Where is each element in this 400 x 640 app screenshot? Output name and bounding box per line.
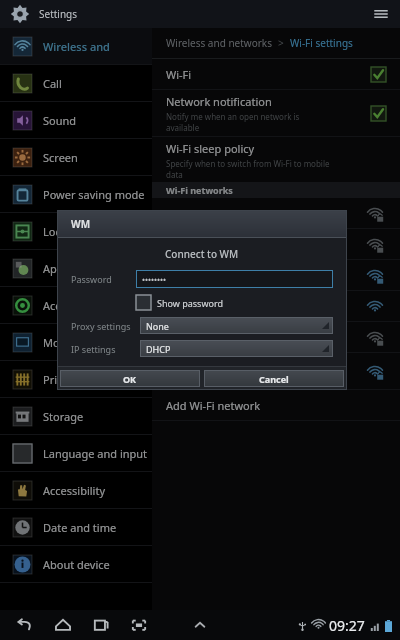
staticText: DHCP: [146, 343, 171, 355]
button[interactable]: WMopen: [152, 291, 400, 321]
button[interactable]: DHCP: [140, 340, 333, 357]
button[interactable]: Wi-Fi sleep policy: [152, 137, 400, 182]
staticText: WM3: [166, 268, 193, 283]
staticText: Date and time: [43, 520, 117, 535]
staticText: >: [278, 36, 284, 50]
button[interactable]: WM4: [152, 322, 400, 352]
button[interactable]: Accessibility: [0, 472, 152, 508]
staticText: WM: [71, 217, 91, 231]
staticText: Privacy: [43, 372, 80, 387]
button[interactable]: About device: [0, 546, 152, 582]
button[interactable]: OK: [60, 370, 200, 387]
button[interactable]: Network notification: [152, 90, 400, 136]
staticText: Wi-Fi networks: [166, 184, 233, 196]
staticText: Cancel: [259, 373, 289, 385]
staticText: Secured with WEP: [166, 374, 234, 385]
button[interactable]: Language and input: [0, 435, 152, 471]
button[interactable]: Power saving mode: [0, 176, 152, 212]
button[interactable]: Show notifications: [189, 614, 211, 636]
button[interactable]: Wi-Fi: [152, 59, 400, 89]
staticText: Motion: [43, 335, 80, 350]
staticText: Show password: [157, 297, 223, 309]
button[interactable]: More options: [366, 0, 396, 28]
staticText: Power saving mode: [43, 187, 145, 202]
button[interactable]: 09:27: [297, 616, 392, 635]
button[interactable]: WM3: [152, 260, 400, 290]
staticText: WMtest: [166, 358, 206, 373]
button[interactable]: Screen: [0, 139, 152, 175]
staticText: Wi-Fi settings: [290, 36, 353, 50]
staticText: Specify when to switch from Wi-Fi to mob…: [166, 158, 330, 169]
staticText: Wi-Fi sleep policy: [166, 141, 255, 156]
button[interactable]: ••••••••: [136, 270, 333, 288]
staticText: WM1: [166, 206, 193, 221]
button[interactable]: WM2: [152, 229, 400, 259]
button[interactable]: Recent apps: [90, 614, 112, 636]
button[interactable]: Accounts and sync: [0, 287, 152, 323]
staticText: Sound: [43, 113, 77, 128]
button[interactable]: Motion: [0, 324, 152, 360]
button[interactable]: None: [140, 317, 333, 334]
staticText: Call: [43, 76, 62, 91]
button[interactable]: Cancel: [204, 370, 344, 387]
staticText: Network notification: [166, 94, 272, 109]
button[interactable]: Date and time: [0, 509, 152, 545]
button[interactable]: Application manager: [0, 250, 152, 286]
staticText: Application manager: [43, 261, 151, 276]
button[interactable]: Storage: [0, 398, 152, 434]
button[interactable]: Back: [14, 614, 36, 636]
staticText: Wi-Fi: [166, 67, 371, 82]
button[interactable]: Wireless and networks: [166, 36, 272, 50]
staticText: available: [166, 122, 200, 133]
button[interactable]: WMtest: [152, 353, 400, 389]
staticText: WMopen: [166, 299, 213, 314]
staticText: Wireless and networks: [43, 39, 152, 54]
staticText: 09:27: [329, 616, 365, 635]
button[interactable]: Show password: [136, 295, 223, 310]
button[interactable]: WM1: [152, 198, 400, 228]
staticText: WM2: [166, 237, 193, 252]
staticText: Storage: [43, 409, 84, 424]
staticText: Connect to WM: [165, 247, 239, 261]
staticText: Screen: [43, 150, 78, 165]
staticText: Language and input: [43, 446, 148, 461]
staticText: None: [146, 320, 169, 332]
staticText: OK: [123, 373, 137, 385]
button[interactable]: Sound: [0, 102, 152, 138]
button[interactable]: Add Wi-Fi network: [152, 390, 400, 420]
button[interactable]: Wireless and networks: [0, 28, 152, 64]
staticText: Location services: [43, 224, 132, 239]
button[interactable]: Screenshot: [128, 614, 150, 636]
button[interactable]: Call: [0, 65, 152, 101]
staticText: Settings: [39, 7, 78, 21]
staticText: data: [166, 169, 183, 178]
button[interactable]: Home: [52, 614, 74, 636]
staticText: ••••••••: [142, 274, 167, 285]
staticText: Add Wi-Fi network: [166, 398, 261, 413]
staticText: IP settings: [71, 343, 136, 355]
button[interactable]: Location services: [0, 213, 152, 249]
button[interactable]: Privacy: [0, 361, 152, 397]
staticText: About device: [43, 557, 110, 572]
staticText: Password: [71, 273, 136, 285]
staticText: WM4: [166, 330, 193, 345]
staticText: Accessibility: [43, 483, 106, 498]
staticText: Accounts and sync: [43, 298, 139, 313]
staticText: Notify me when an open network is: [166, 111, 300, 122]
staticText: Proxy settings: [71, 320, 136, 332]
